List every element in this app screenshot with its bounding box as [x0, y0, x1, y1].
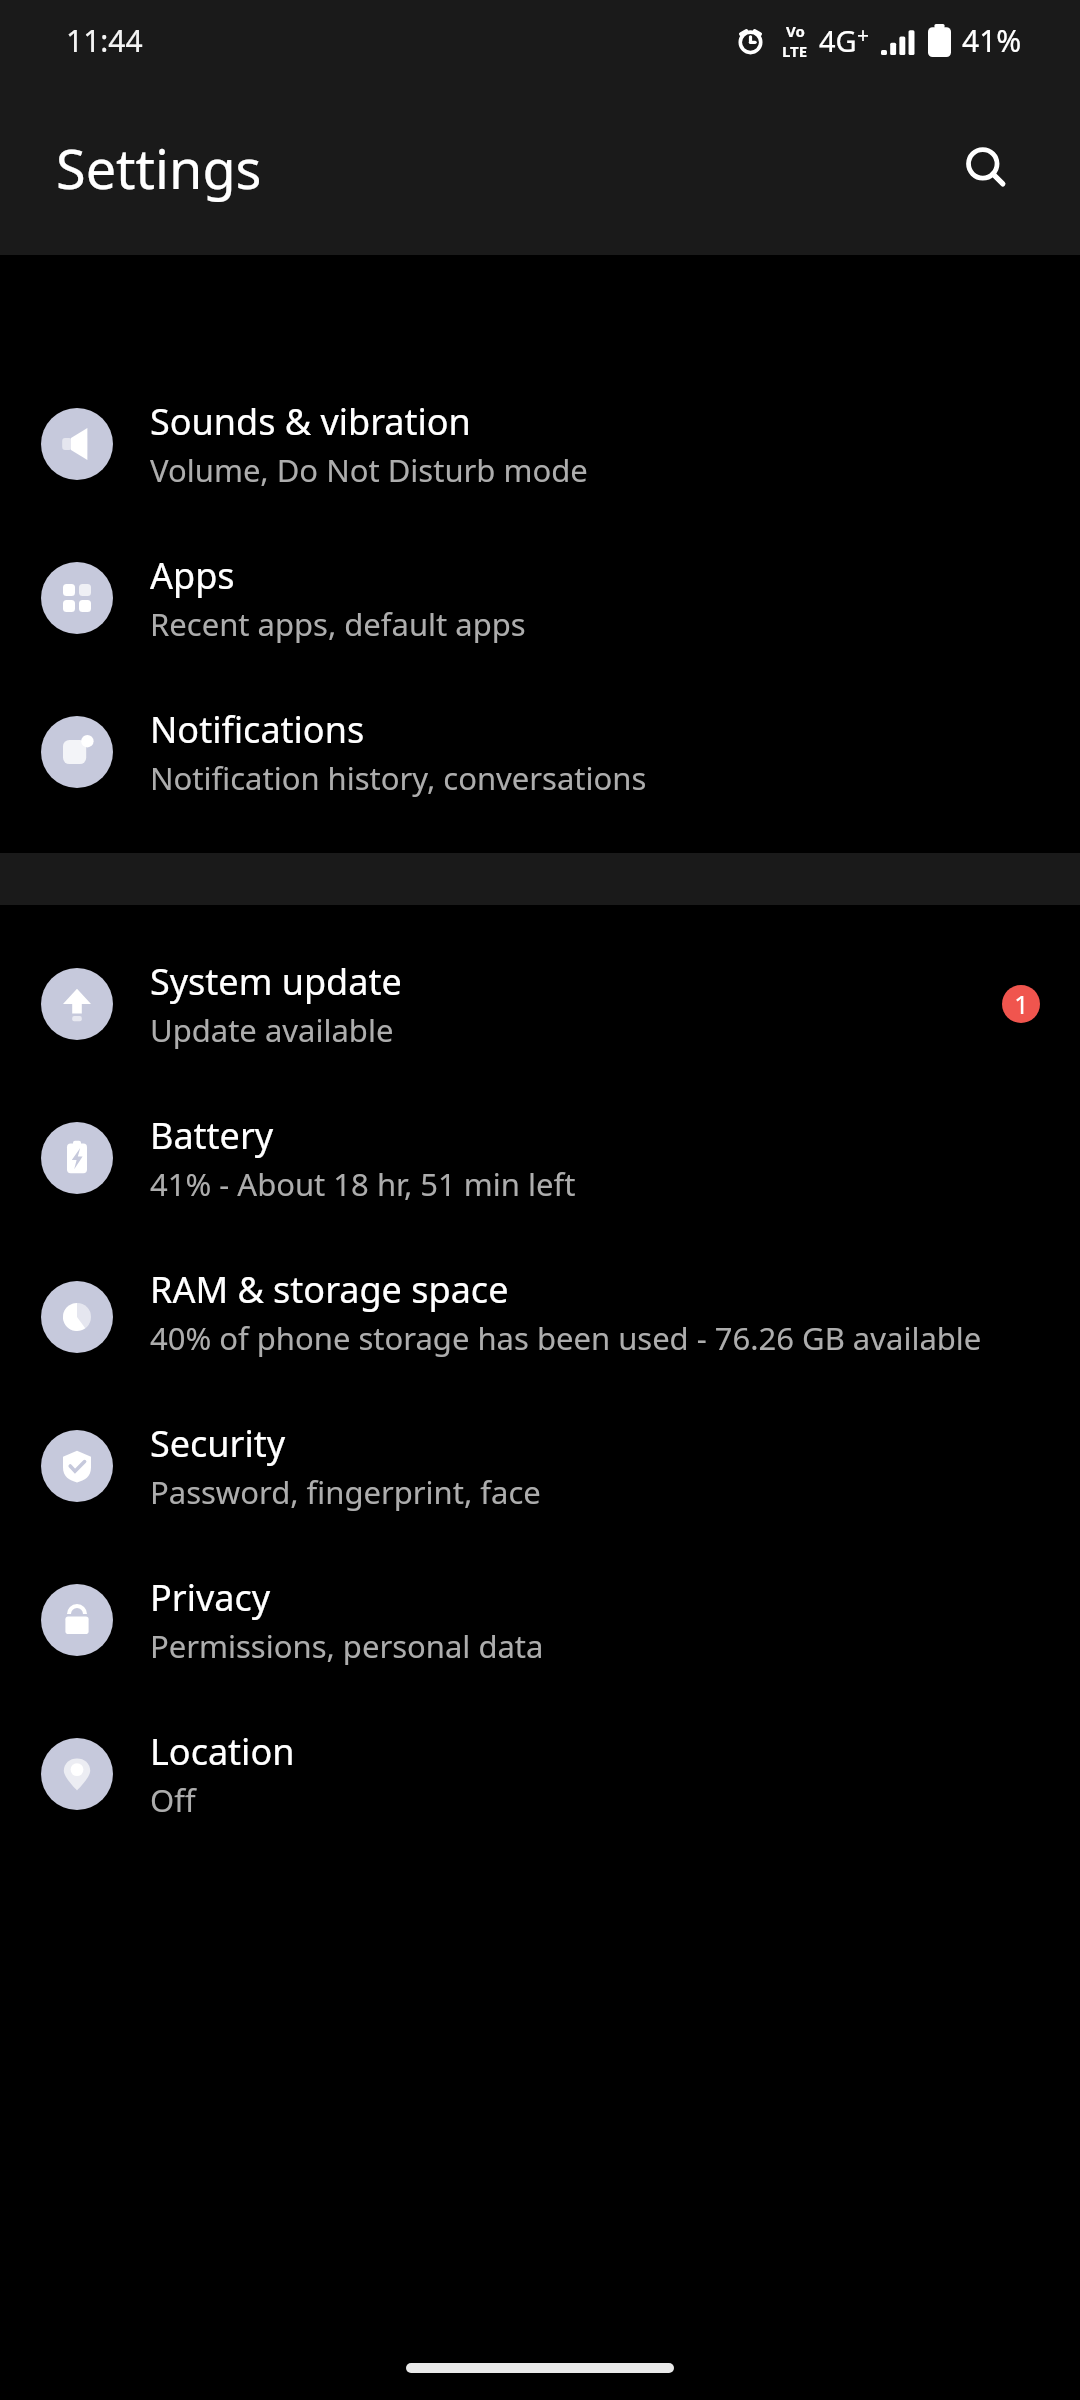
staticText: Sounds & vibration — [150, 397, 471, 446]
staticText: Privacy — [150, 1573, 271, 1622]
staticText: + — [857, 21, 870, 50]
button[interactable]: Apps — [0, 521, 1080, 675]
staticText: 40% of phone storage has been used - 76.… — [150, 1317, 982, 1359]
staticText: Password, fingerprint, face — [150, 1471, 541, 1513]
button[interactable]: Notifications — [0, 675, 1080, 829]
button[interactable]: Security — [0, 1389, 1080, 1543]
staticText: Location — [150, 1727, 295, 1776]
staticText: Battery — [150, 1111, 274, 1160]
button[interactable]: Sounds & vibration — [0, 367, 1080, 521]
button[interactable]: Battery — [0, 1081, 1080, 1235]
staticText: Notifications — [150, 705, 365, 754]
staticText: 1 — [1014, 987, 1029, 1021]
staticText: 41% - About 18 hr, 51 min left — [150, 1163, 576, 1205]
staticText: LTE — [782, 41, 808, 61]
staticText: 4G — [819, 21, 857, 60]
staticText: 41% — [962, 20, 1022, 61]
button[interactable]: System update — [0, 927, 1080, 1081]
staticText: RAM & storage space — [150, 1265, 509, 1314]
staticText: Notification history, conversations — [150, 757, 647, 799]
staticText: Permissions, personal data — [150, 1625, 544, 1667]
staticText: 11:44 — [66, 20, 143, 61]
staticText: Recent apps, default apps — [150, 603, 526, 645]
staticText: Apps — [150, 551, 235, 600]
button[interactable]: RAM & storage space — [0, 1235, 1080, 1389]
staticText: Update available — [150, 1009, 394, 1051]
staticText: Volume, Do Not Disturb mode — [150, 449, 588, 491]
staticText: Vo — [786, 21, 805, 41]
staticText: Off — [150, 1779, 196, 1821]
staticText: Security — [150, 1419, 286, 1468]
button[interactable]: Search settings — [936, 118, 1036, 218]
button[interactable]: Location — [0, 1697, 1080, 1851]
staticText: System update — [150, 957, 402, 1006]
staticText: Settings — [56, 131, 262, 205]
button[interactable]: Privacy — [0, 1543, 1080, 1697]
